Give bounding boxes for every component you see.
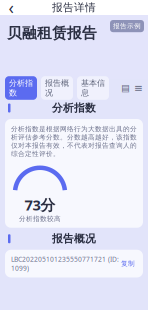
staticText: LBC202205101235550771721 (ID:1099) bbox=[11, 255, 119, 272]
staticText: ≡ bbox=[134, 82, 143, 94]
staticText: 贝融租赁报告 bbox=[7, 24, 97, 42]
staticText: 报告概况 bbox=[52, 232, 96, 245]
staticText: 报告概况 bbox=[45, 78, 69, 98]
staticText: ▤ bbox=[121, 83, 130, 93]
staticText: 复制 bbox=[121, 259, 135, 268]
staticText: 报告示例 bbox=[113, 22, 141, 30]
button[interactable]: 报告示例 bbox=[110, 20, 144, 32]
staticText: 73分 bbox=[24, 195, 55, 215]
button[interactable]: Menu bbox=[134, 83, 143, 92]
button[interactable]: 复制 bbox=[121, 259, 135, 268]
staticText: 分析指数较高 bbox=[19, 215, 61, 223]
staticText: ‹ bbox=[8, 0, 13, 19]
button[interactable]: 报告概况 bbox=[41, 76, 73, 100]
staticText: 分析指数 bbox=[52, 101, 96, 114]
button[interactable]: 分析指数 bbox=[5, 76, 37, 100]
button[interactable]: 基本信息 bbox=[77, 76, 109, 100]
staticText: 分析指数 bbox=[9, 78, 33, 98]
staticText: 报告详情 bbox=[52, 1, 96, 14]
staticText: 基本信息 bbox=[81, 78, 105, 98]
staticText: 分析指数是根据网络行为大数据出具的分析评估参考分数。分数越高越好，该指数仅对本报… bbox=[11, 125, 137, 158]
button[interactable]: Back bbox=[0, 0, 22, 15]
button[interactable]: Download bbox=[121, 83, 130, 92]
